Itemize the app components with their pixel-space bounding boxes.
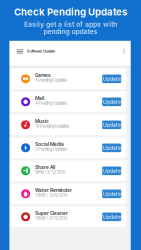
- staticText: pending updates: [43, 28, 97, 36]
- staticText: 9MB | 5/12/2016: [35, 170, 65, 175]
- staticText: Update: [103, 214, 121, 220]
- staticText: 16MB | 07/9/2016: [35, 216, 67, 221]
- staticText: Update: [103, 76, 121, 82]
- button[interactable]: More options: [120, 42, 128, 59]
- button[interactable]: Mail: [11, 91, 126, 112]
- staticText: 3 Pending Updates: [35, 147, 67, 152]
- staticText: Update: [103, 191, 121, 197]
- staticText: Share All: [35, 164, 55, 170]
- button[interactable]: Super Cleaner: [11, 206, 126, 227]
- staticText: Check Pending Updates: [14, 6, 127, 18]
- staticText: Mail: [35, 95, 44, 101]
- staticText: Update: [103, 168, 121, 174]
- staticText: Social Media: [35, 141, 64, 147]
- staticText: 4 Pending Updates: [35, 101, 67, 106]
- staticText: Games: [35, 72, 51, 78]
- staticText: Super Cleaner: [35, 210, 68, 216]
- staticText: 3 Pending Updates: [35, 78, 67, 83]
- button[interactable]: Water Reminder: [11, 183, 126, 204]
- button[interactable]: Menu: [13, 43, 26, 59]
- staticText: Music: [35, 118, 49, 124]
- staticText: Update: [103, 122, 121, 128]
- staticText: Update: [103, 145, 121, 151]
- staticText: Software Update: [27, 49, 55, 53]
- staticText: Easily get a list of apps with: [24, 20, 117, 28]
- button[interactable]: Music: [11, 114, 126, 135]
- button[interactable]: Social Media: [11, 137, 126, 158]
- button[interactable]: Games: [11, 68, 126, 89]
- staticText: Update: [103, 99, 121, 105]
- staticText: 10 Pending Updates: [35, 124, 69, 129]
- staticText: 10MB | 12/6/2016: [35, 193, 67, 198]
- button[interactable]: Share All: [11, 160, 126, 181]
- staticText: Water Reminder: [35, 187, 72, 193]
